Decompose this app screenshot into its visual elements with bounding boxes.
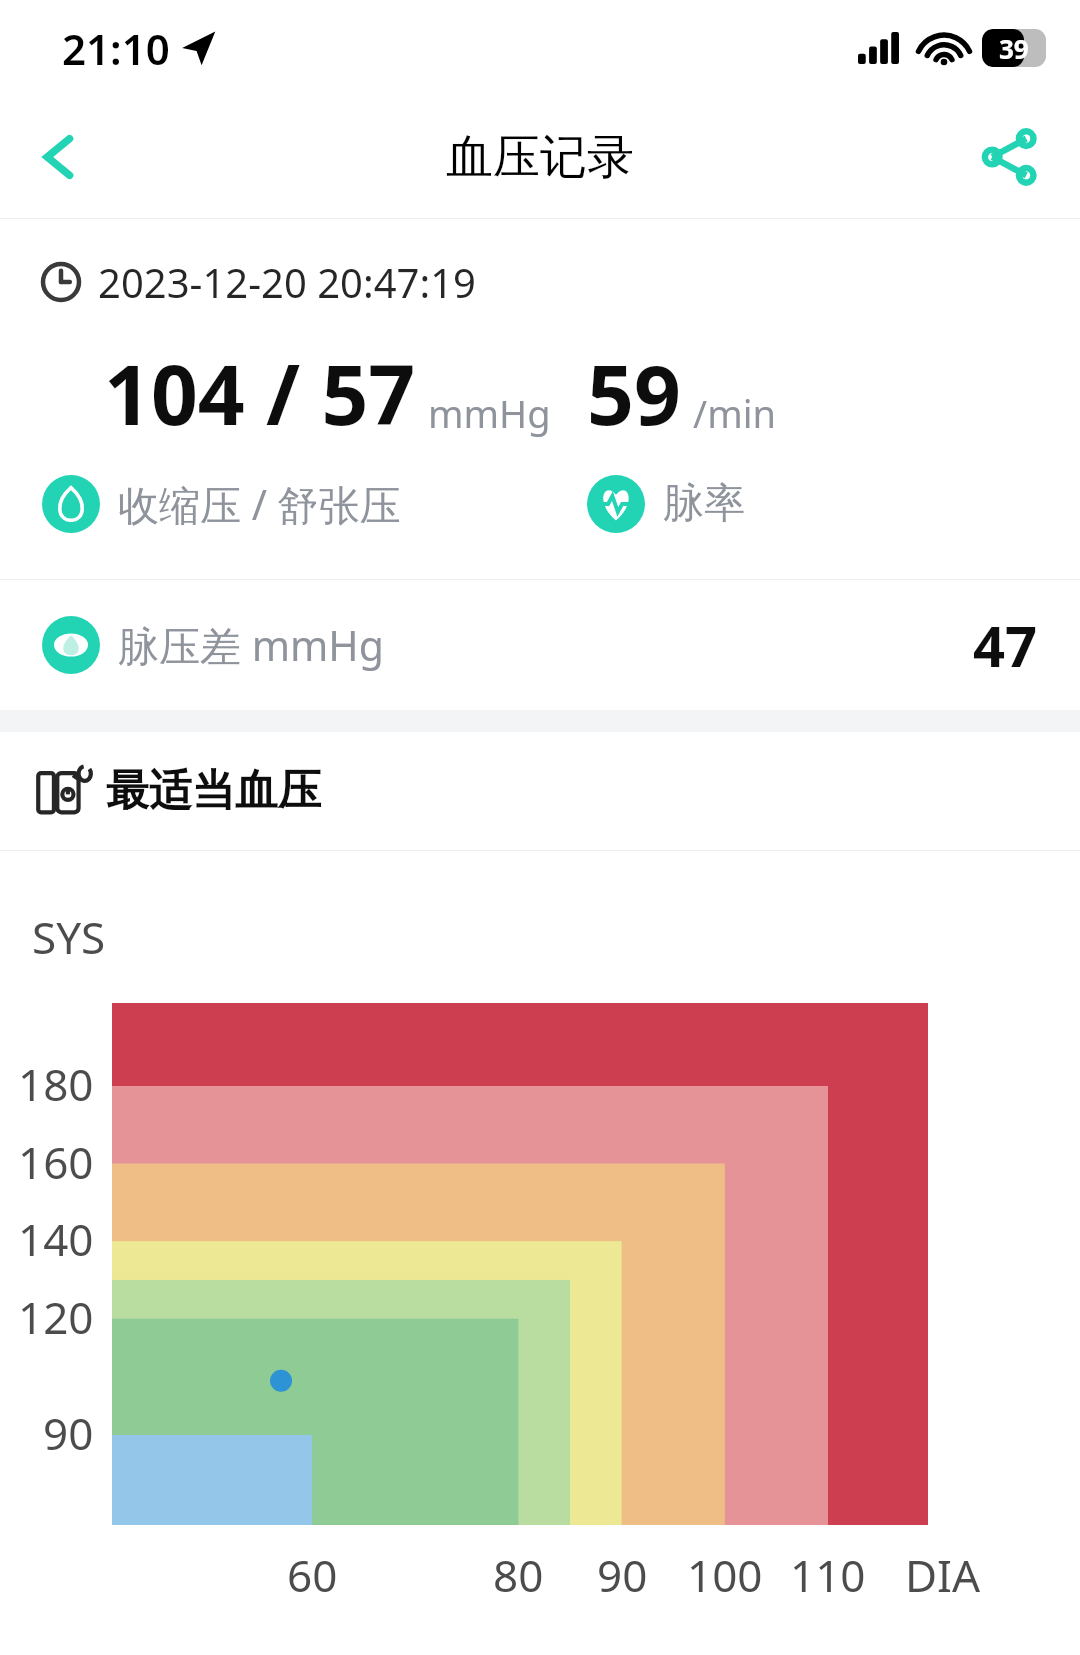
button[interactable]: Share (968, 115, 1052, 199)
staticText: 180 (18, 1054, 94, 1114)
staticText: 80 (493, 1545, 544, 1605)
staticText: 140 (18, 1209, 94, 1269)
staticText: 血压记录 (446, 128, 634, 187)
staticText: mmHg (428, 387, 551, 439)
button[interactable]: 脉压差 mmHg (0, 580, 1080, 710)
staticText: 最适当血压 (106, 764, 321, 818)
staticText: 120 (18, 1287, 94, 1347)
staticText: 39 (999, 31, 1029, 66)
staticText: 104 / 57 (104, 337, 416, 449)
staticText: 脉压差 mmHg (118, 617, 384, 673)
staticText: 60 (287, 1545, 338, 1605)
staticText: 90 (43, 1403, 94, 1463)
staticText: 59 (587, 337, 681, 449)
staticText: DIA (905, 1545, 981, 1605)
staticText: 收缩压 / 舒张压 (118, 476, 401, 532)
staticText: 90 (597, 1545, 648, 1605)
staticText: 47 (973, 607, 1038, 683)
staticText: 110 (790, 1545, 866, 1605)
button[interactable]: Back (20, 117, 100, 197)
staticText: 21:10 (62, 20, 170, 77)
button[interactable]: 最适当血压 (0, 732, 1080, 850)
staticText: 2023-12-20 20:47:19 (98, 255, 476, 309)
staticText: 160 (18, 1132, 94, 1192)
staticText: 脉率 (663, 478, 745, 530)
staticText: 100 (687, 1545, 763, 1605)
staticText: SYS (32, 907, 106, 967)
staticText: /min (693, 387, 776, 439)
